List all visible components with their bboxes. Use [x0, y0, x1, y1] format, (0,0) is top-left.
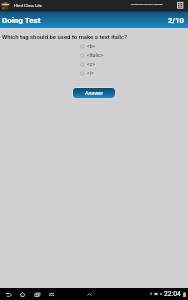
- staticText: DOWNLOAD THE FULL VERSION: [131, 3, 163, 6]
- button[interactable]: Answer: [72, 87, 115, 98]
- staticText: Doing Test: [2, 16, 41, 25]
- staticText: 2/10: [168, 16, 184, 25]
- button[interactable]: Home: [17, 289, 27, 299]
- button[interactable]: <italic>: [80, 51, 104, 59]
- button[interactable]: Recent apps: [32, 289, 42, 299]
- staticText: <c>: [87, 61, 96, 67]
- staticText: <italic>: [87, 52, 104, 58]
- button[interactable]: Show hidden icons: [85, 290, 93, 298]
- staticText: 22:04: [164, 290, 181, 298]
- button[interactable]: More options: [176, 1, 185, 10]
- staticText: <b>: [87, 43, 96, 49]
- button[interactable]: Screenshot: [46, 289, 56, 299]
- button[interactable]: <c>: [80, 60, 96, 68]
- staticText: Html Class Lite: [14, 3, 42, 8]
- staticText: <i>: [87, 70, 94, 76]
- button[interactable]: Back: [3, 289, 13, 299]
- staticText: Answer: [85, 90, 104, 96]
- button[interactable]: <b>: [80, 42, 96, 50]
- staticText: Which tag should be used to make a text …: [2, 33, 128, 40]
- button[interactable]: <i>: [80, 69, 94, 77]
